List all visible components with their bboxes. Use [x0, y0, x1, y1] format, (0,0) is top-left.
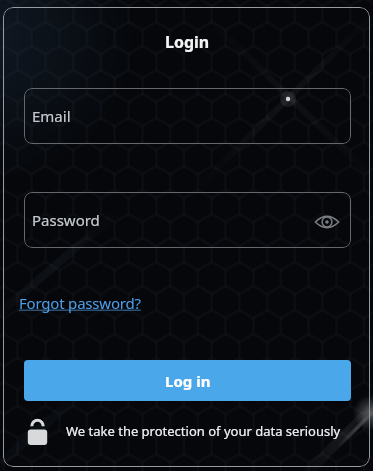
- staticText: Password: [32, 210, 100, 230]
- button[interactable]: Log in: [24, 360, 351, 401]
- button[interactable]: Forgot password?: [19, 293, 141, 313]
- button[interactable]: Email: [24, 88, 351, 144]
- staticText: Log in: [165, 371, 211, 391]
- button[interactable]: Password: [24, 192, 351, 248]
- staticText: Email: [32, 106, 71, 126]
- staticText: We take the protection of your data seri…: [66, 422, 341, 440]
- staticText: Login: [165, 31, 210, 53]
- staticText: Forgot password?: [19, 293, 141, 313]
